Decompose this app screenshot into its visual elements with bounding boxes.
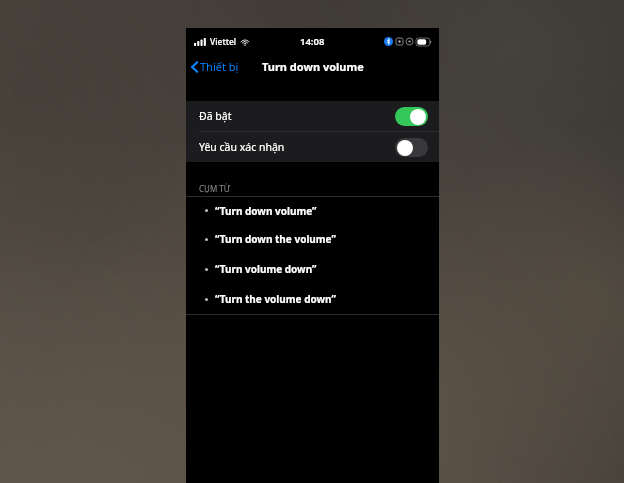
button[interactable]: Toggle off [395,138,428,157]
staticText: “Turn down the volume” [215,232,336,246]
staticText: Thiết bị [200,59,239,74]
button[interactable]: Toggle on [395,107,428,126]
staticText: Yêu cầu xác nhận [199,140,285,154]
staticText: Turn down volume [262,59,364,74]
staticText: “Turn volume down” [215,262,317,276]
button[interactable]: “Turn the volume down” [186,284,439,314]
staticText: CỤM TỪ [199,183,230,194]
staticText: “Turn down volume” [215,204,317,218]
button[interactable]: Yêu cầu xác nhận [186,132,439,162]
staticText: 14:08 [300,35,325,48]
button[interactable]: “Turn down the volume” [186,224,439,254]
button[interactable]: Đã bật [186,101,439,131]
staticText: “Turn the volume down” [215,292,336,306]
staticText: Đã bật [199,109,232,123]
button[interactable]: “Turn volume down” [186,254,439,284]
button[interactable]: “Turn down volume” [186,197,439,224]
button[interactable]: Thiết bị [186,57,245,76]
staticText: Viettel [210,36,237,48]
